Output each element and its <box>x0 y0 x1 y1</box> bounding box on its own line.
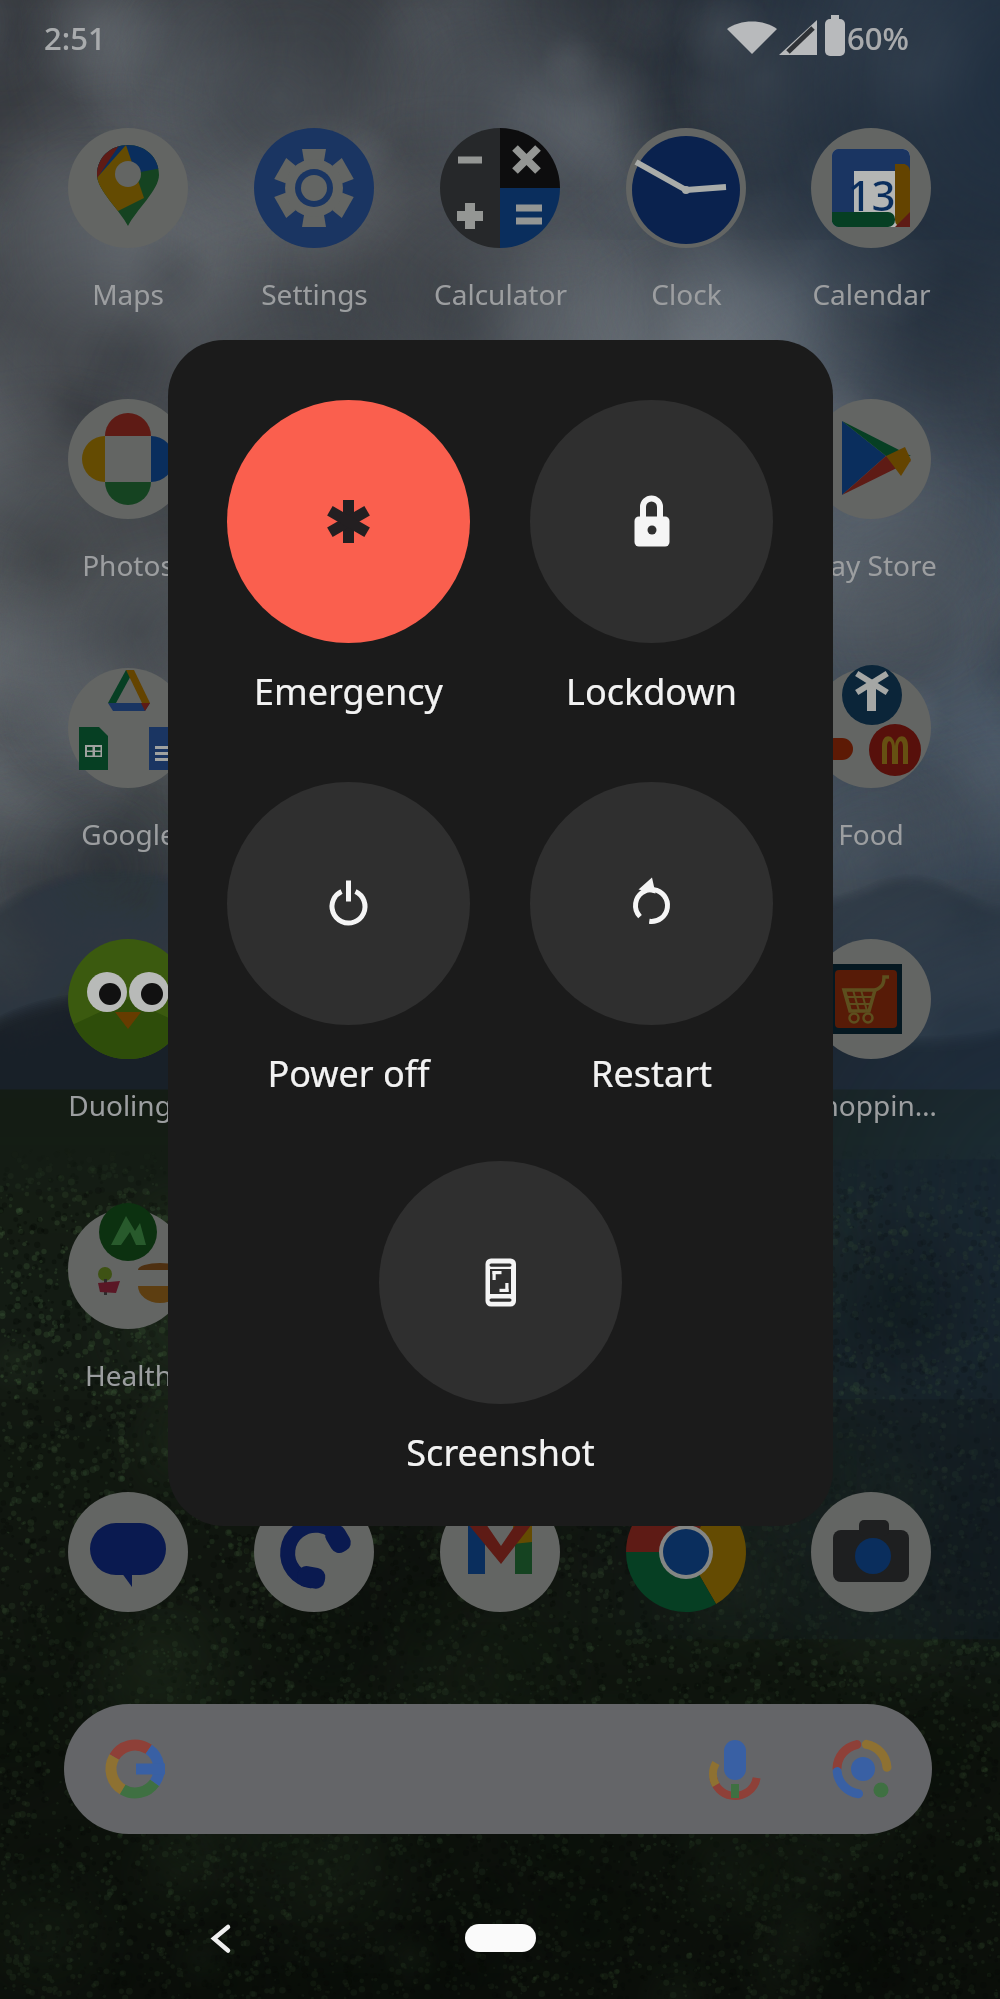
staticText: Play Store <box>806 546 937 584</box>
staticText: Power off <box>267 1049 430 1098</box>
button[interactable]: Back <box>186 1908 248 1970</box>
staticText: Google <box>81 815 176 853</box>
button[interactable] <box>64 1704 932 1834</box>
staticText: Photos <box>82 546 174 584</box>
staticText: Health <box>85 1356 172 1394</box>
button[interactable]: Home <box>465 1924 536 1952</box>
staticText: Screenshot <box>406 1428 595 1477</box>
staticText: Maps <box>92 275 164 313</box>
button[interactable]: Emergency <box>227 400 470 716</box>
button[interactable]: Lockdown <box>530 400 773 716</box>
button[interactable]: Power off <box>227 782 470 1098</box>
staticText: Lockdown <box>566 667 737 716</box>
button[interactable]: Screenshot <box>379 1161 622 1477</box>
button[interactable]: Restart <box>530 782 773 1098</box>
staticText: Emergency <box>254 667 443 716</box>
staticText: 2:51 <box>44 17 106 59</box>
staticText: Shoppin… <box>806 1086 937 1124</box>
staticText: Duolingo <box>68 1086 189 1124</box>
staticText: Calendar <box>812 275 931 313</box>
staticText: Calculator <box>434 275 567 313</box>
staticText: 60% <box>847 17 909 59</box>
staticText: Settings <box>261 275 368 313</box>
staticText: 13 <box>847 166 896 223</box>
staticText: Clock <box>651 275 722 313</box>
staticText: Food <box>838 815 904 853</box>
staticText: Restart <box>591 1049 712 1098</box>
